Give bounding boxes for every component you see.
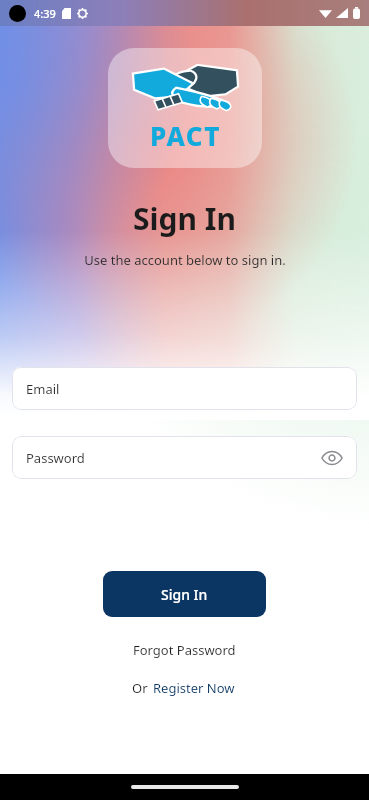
staticText: Password — [26, 449, 85, 467]
staticText: Use the account below to sign in. — [84, 251, 286, 269]
button[interactable]: Email — [12, 367, 357, 410]
button[interactable]: Sign In — [103, 571, 266, 617]
button[interactable]: Forgot Password — [119, 637, 250, 663]
staticText: Email — [26, 380, 60, 398]
staticText: PACT — [150, 118, 221, 153]
staticText: Sign In — [161, 585, 208, 604]
button[interactable]: Show password — [319, 445, 345, 471]
staticText: Register Now — [153, 679, 235, 697]
staticText: Forgot Password — [133, 641, 236, 659]
staticText: 4:39 — [34, 6, 56, 21]
button[interactable]: Password — [12, 436, 357, 479]
staticText: Or — [132, 679, 151, 697]
button[interactable]: Register Now — [151, 675, 237, 701]
staticText: Sign In — [133, 198, 236, 239]
